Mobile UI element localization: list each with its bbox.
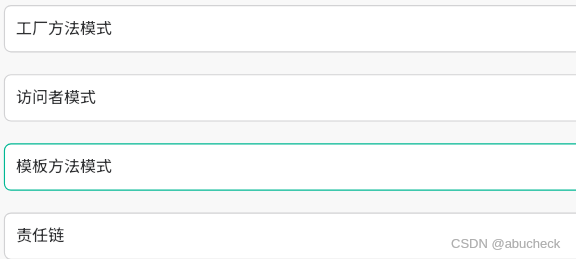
staticText: 工厂方法模式 [16,15,113,38]
button[interactable]: 模板方法模式 [4,144,576,190]
staticText: 模板方法模式 [16,153,113,176]
staticText: CSDN @abucheck [451,236,561,251]
button[interactable]: 责任链 [4,213,576,259]
staticText: 访问者模式 [16,84,97,107]
button[interactable]: 工厂方法模式 [4,6,576,52]
button[interactable]: 访问者模式 [4,75,576,121]
staticText: 责任链 [16,222,65,245]
